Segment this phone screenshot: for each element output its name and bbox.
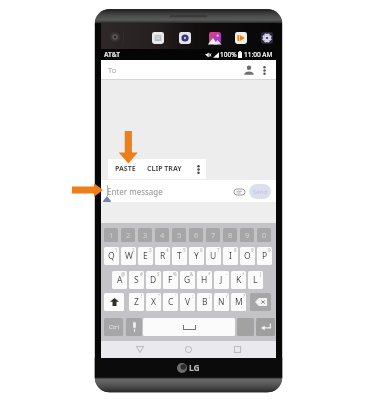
button[interactable]: Y [189,247,204,265]
staticText: G [184,274,191,286]
button[interactable]: Enter [256,318,275,336]
staticText: % [173,271,177,277]
staticText: # [140,271,143,277]
button[interactable]: A [112,271,127,289]
staticText: 4 [160,230,165,240]
staticText: I [229,250,232,262]
button[interactable]: C [163,293,178,311]
button[interactable]: More options [257,63,271,77]
button[interactable]: F [163,271,178,289]
button[interactable]: Q [104,247,119,265]
button[interactable]: Home [180,341,197,358]
button[interactable]: O [240,247,255,265]
staticText: 5 [177,230,182,240]
staticText: CLIP TRAY [147,164,182,174]
staticText: Z [134,296,139,308]
staticText: A [117,274,123,286]
button[interactable]: 8 [223,228,237,242]
button[interactable]: Send [249,184,271,199]
staticText: J [220,274,223,286]
button[interactable]: 7 [206,228,220,242]
button[interactable]: 0 [257,228,271,242]
staticText: Q [108,250,115,262]
button[interactable]: Shift [104,293,124,311]
staticText: 2 [126,230,131,240]
staticText: $ [157,271,160,277]
button[interactable]: P [257,247,272,265]
staticText: 8 [228,230,233,240]
button[interactable]: Backspace [250,293,271,311]
staticText: Send [253,188,268,196]
staticText: D [150,274,157,286]
staticText: W [125,250,133,262]
button[interactable]: D [146,271,161,289]
button[interactable]: I [223,247,238,265]
button[interactable]: X [146,293,161,311]
staticText: 4 [166,247,169,253]
button[interactable]: Recents [229,341,246,358]
staticText: 3 [149,247,152,253]
button[interactable]: PASTE [108,159,142,179]
button[interactable]: 2 [121,228,135,242]
button[interactable]: Attach [232,184,247,199]
button[interactable]: J [214,271,229,289]
button[interactable]: Add recipient [241,62,257,78]
button[interactable]: 1 [104,228,118,242]
button[interactable]: Photos [209,32,221,44]
button[interactable]: App [179,32,191,44]
button[interactable]: Symbols [104,318,123,336]
staticText: * [208,271,211,277]
button[interactable]: 5 [172,228,186,242]
button[interactable]: 3 [138,228,152,242]
staticText: O [244,250,251,262]
staticText: 7 [211,230,216,240]
button[interactable]: M [231,293,246,311]
button[interactable]: Voice input [126,318,142,336]
button[interactable]: G [180,271,195,289]
staticText: / [226,293,228,299]
staticText: 9 [251,247,254,253]
button[interactable]: U [206,247,221,265]
button[interactable]: Notes [152,32,164,44]
staticText: T [177,250,182,262]
button[interactable]: N [214,293,229,311]
staticText: P [262,250,268,262]
button[interactable]: H [197,271,212,289]
button[interactable]: Z [129,293,144,311]
staticText: + [242,271,245,277]
button[interactable]: More [191,159,206,179]
button[interactable]: CLIP TRAY [142,159,187,179]
button[interactable]: 4 [155,228,169,242]
staticText: 2 [132,247,135,253]
button[interactable]: V [180,293,195,311]
staticText: - [226,271,228,277]
staticText: 1 [115,247,118,253]
button[interactable]: Settings [261,32,273,44]
staticText: To [108,65,117,75]
staticText: N [218,296,225,308]
staticText: 1 [109,230,114,240]
button[interactable]: 6 [189,228,203,242]
button[interactable]: S [129,271,144,289]
staticText: & [190,271,194,277]
staticText: Enter message [107,186,163,197]
button[interactable]: Back [131,341,148,358]
button[interactable]: Video [235,32,247,44]
button[interactable]: Space [143,318,235,336]
button[interactable]: L [248,271,263,289]
button[interactable]: R [155,247,170,265]
staticText: U [210,250,217,262]
staticText: 5 [183,247,186,253]
staticText: R [160,250,166,262]
button[interactable]: E [138,247,153,265]
button[interactable]: W [121,247,136,265]
button[interactable]: T [172,247,187,265]
button[interactable]: B [197,293,212,311]
staticText: L [253,274,258,286]
staticText: @ [121,271,126,277]
staticText: 9 [245,230,250,240]
button[interactable]: 9 [240,228,254,242]
staticText: 0 [262,230,267,240]
button[interactable]: K [231,271,246,289]
